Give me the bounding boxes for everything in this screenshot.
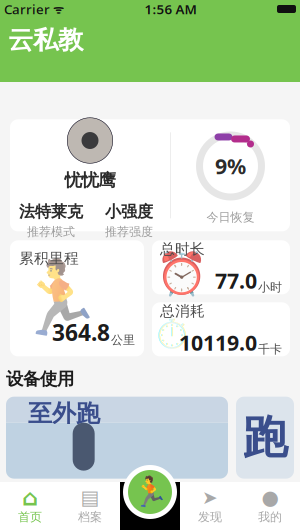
staticText: 云私教: [8, 24, 83, 55]
button[interactable]: 跑: [236, 397, 294, 479]
staticText: 至外跑: [28, 399, 100, 428]
staticText: 🏃: [131, 475, 168, 509]
staticText: 累积里程: [19, 249, 79, 267]
staticText: 首页: [18, 510, 42, 524]
staticText: ᯤ: [50, 1, 64, 17]
staticText: Carrier: [4, 0, 50, 18]
staticText: ➤: [202, 487, 218, 508]
staticText: 跑: [242, 410, 287, 465]
staticText: 总消耗: [160, 302, 205, 320]
button[interactable]: 至外跑: [6, 397, 228, 479]
staticText: 小时: [258, 280, 282, 294]
staticText: 小强度: [105, 202, 153, 221]
staticText: 我的: [258, 510, 282, 524]
staticText: 🏃: [14, 257, 104, 339]
button[interactable]: ⌂: [0, 482, 60, 530]
staticText: 总时长: [160, 240, 205, 258]
staticText: 公里: [111, 333, 135, 347]
staticText: ▤: [80, 486, 99, 509]
staticText: 推荐强度: [105, 224, 153, 239]
staticText: 推荐模式: [27, 224, 75, 239]
staticText: 设备使用: [6, 368, 74, 390]
staticText: 77.0: [215, 266, 257, 294]
staticText: ⌂: [22, 485, 38, 510]
staticText: 364.8: [52, 317, 110, 347]
staticText: 忧忧鹰: [64, 169, 115, 191]
button[interactable]: ●: [240, 482, 300, 530]
staticText: 10119.0: [179, 328, 257, 356]
staticText: 档案: [78, 510, 102, 524]
staticText: 法特莱克: [19, 202, 83, 221]
staticText: ⏰: [156, 251, 207, 298]
staticText: 千卡: [258, 342, 282, 356]
button[interactable]: ▤: [60, 482, 120, 530]
staticText: ●: [261, 486, 278, 509]
staticText: 发现: [198, 510, 222, 524]
staticText: 1:56 AM: [144, 0, 196, 18]
button[interactable]: ➤: [180, 482, 240, 530]
staticText: 今日恢复: [206, 210, 254, 225]
staticText: ⏱: [156, 316, 188, 356]
button[interactable]: 开始跑步: [123, 465, 177, 519]
staticText: 9%: [215, 152, 246, 180]
